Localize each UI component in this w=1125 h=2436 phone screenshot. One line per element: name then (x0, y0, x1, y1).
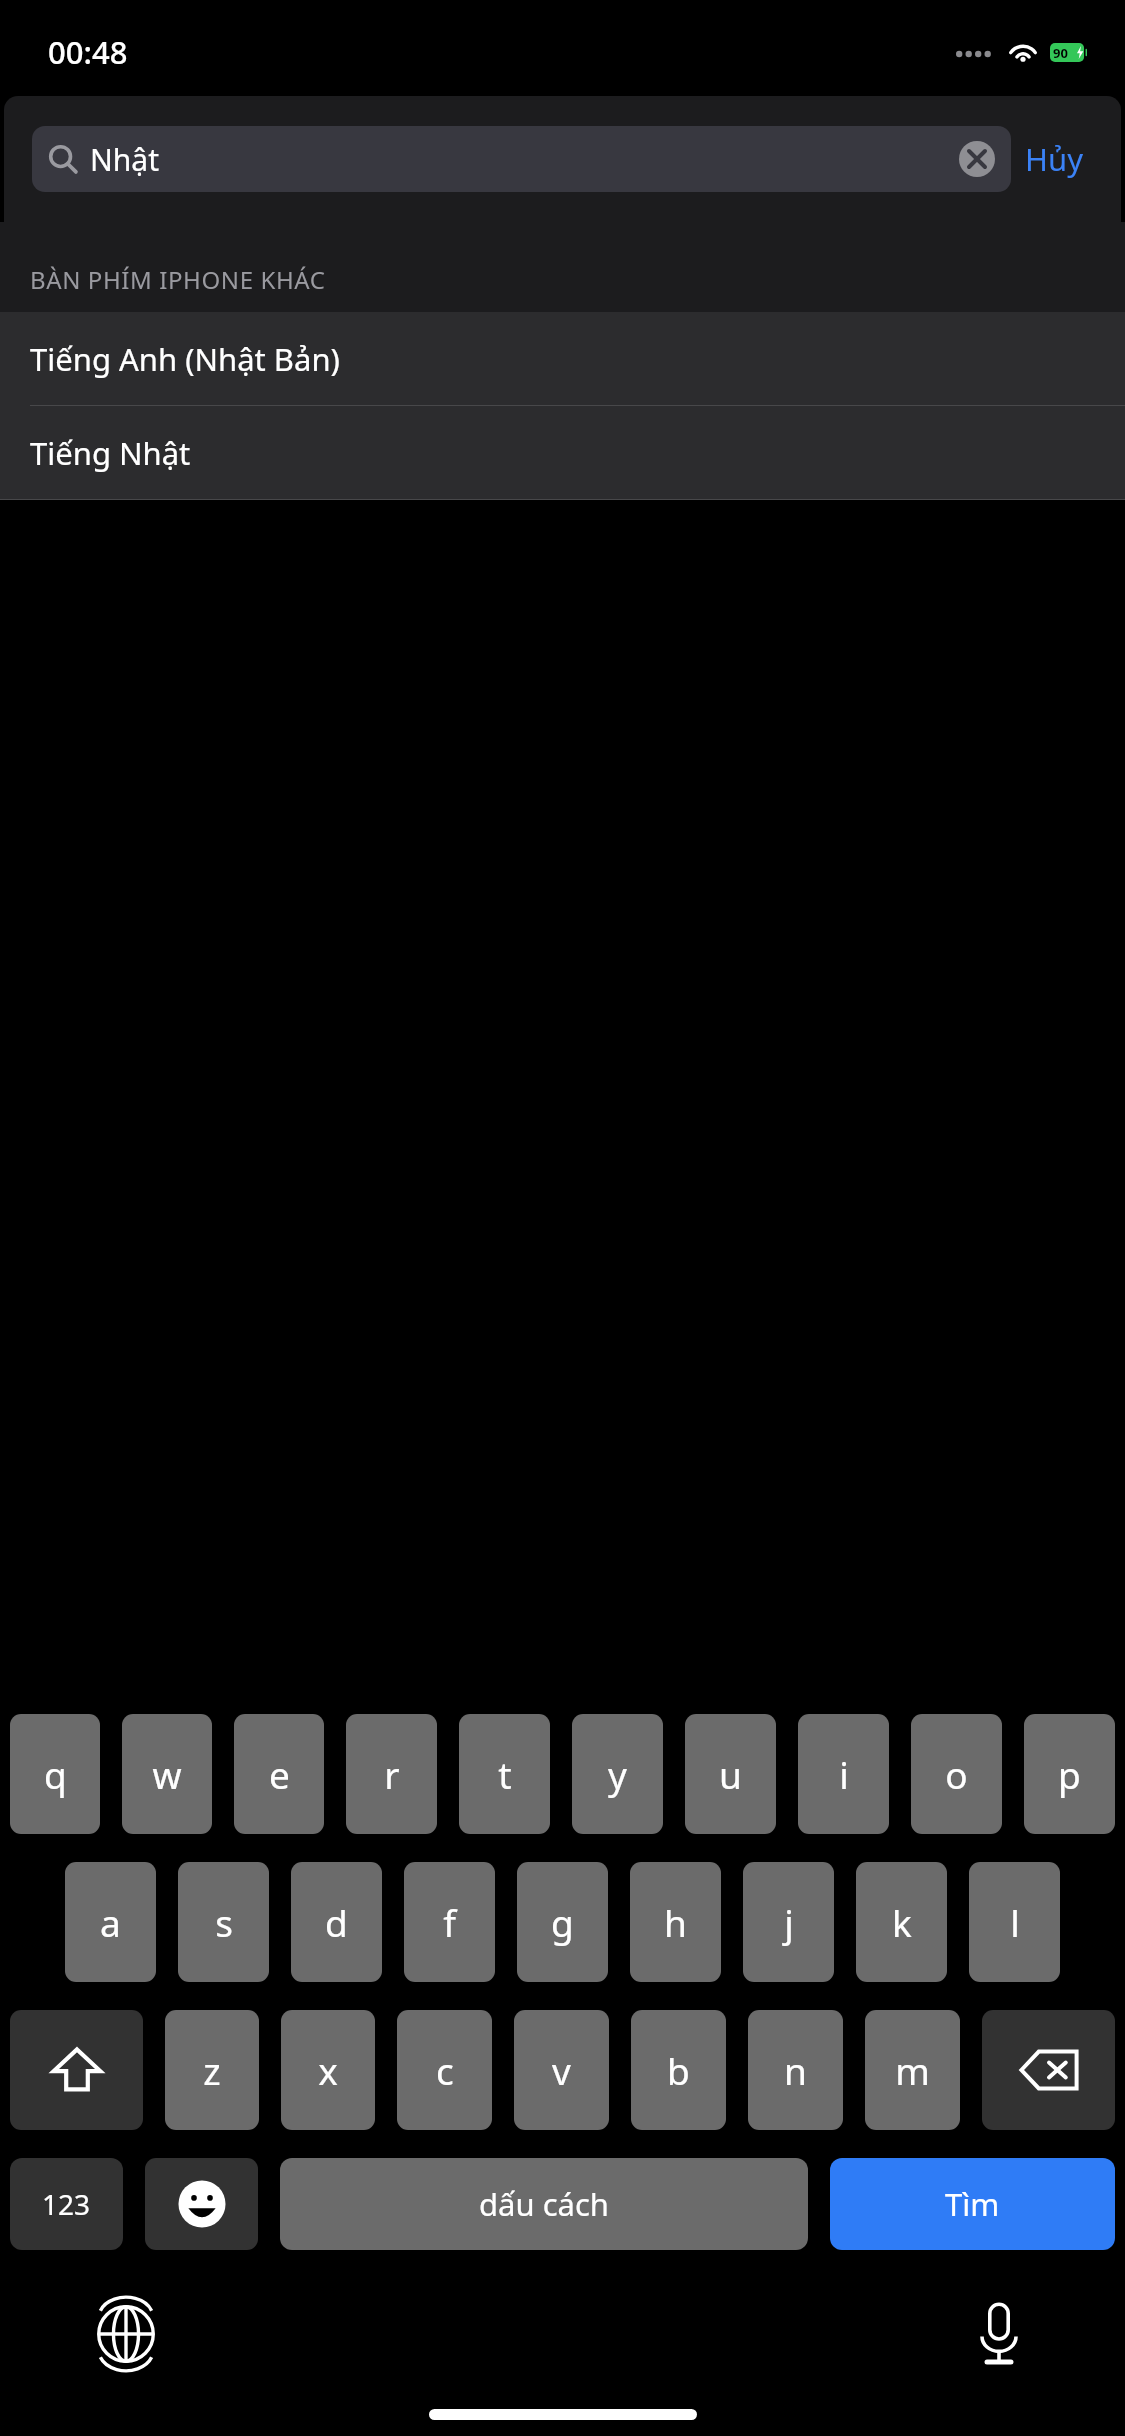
staticText: 123 (42, 2185, 91, 2223)
button[interactable]: q (10, 1714, 100, 1834)
staticText: n (784, 2045, 807, 2095)
button[interactable]: j (743, 1862, 834, 1982)
button[interactable]: Tiếng Anh (Nhật Bản) (0, 312, 1125, 406)
staticText: b (667, 2045, 690, 2095)
staticText: Tiếng Nhật (30, 432, 191, 474)
staticText: Tìm (945, 2183, 1000, 2225)
staticText: 90 (1053, 44, 1068, 62)
button[interactable]: b (631, 2010, 726, 2130)
staticText: u (719, 1749, 742, 1799)
button[interactable]: 123 (10, 2158, 123, 2250)
button[interactable]: i (798, 1714, 889, 1834)
staticText: e (269, 1749, 290, 1799)
staticText: 00:48 (48, 31, 128, 73)
button[interactable]: Clear text (959, 141, 995, 177)
button[interactable]: n (748, 2010, 843, 2130)
staticText: a (100, 1897, 121, 1947)
staticText: y (608, 1749, 627, 1799)
staticText: Tiếng Anh (Nhật Bản) (30, 338, 340, 380)
staticText: t (498, 1749, 512, 1799)
staticText: l (1010, 1897, 1020, 1947)
staticText: r (384, 1749, 400, 1799)
staticText: v (552, 2045, 571, 2095)
button[interactable]: c (397, 2010, 492, 2130)
button[interactable]: w (122, 1714, 212, 1834)
staticText: Hủy (1025, 138, 1083, 180)
button[interactable]: x (281, 2010, 375, 2130)
staticText: p (1058, 1749, 1081, 1799)
button[interactable]: t (459, 1714, 550, 1834)
staticText: BÀN PHÍM IPHONE KHÁC (30, 263, 326, 296)
staticText: j (784, 1897, 794, 1947)
button[interactable]: Dictation (949, 2284, 1049, 2384)
staticText: Nhật (90, 139, 159, 180)
button[interactable]: m (865, 2010, 960, 2130)
button[interactable]: e (234, 1714, 324, 1834)
staticText: f (443, 1897, 456, 1947)
staticText: c (436, 2045, 454, 2095)
button[interactable]: Hủy (1011, 130, 1097, 188)
staticText: s (215, 1897, 233, 1947)
button[interactable]: s (178, 1862, 269, 1982)
staticText: x (318, 2045, 338, 2095)
button[interactable]: f (404, 1862, 495, 1982)
staticText: m (895, 2045, 930, 2095)
button[interactable]: l (969, 1862, 1060, 1982)
staticText: g (551, 1897, 574, 1947)
button[interactable]: Emoji (145, 2158, 258, 2250)
button[interactable]: u (685, 1714, 776, 1834)
button[interactable]: v (514, 2010, 609, 2130)
button[interactable]: Backspace (982, 2010, 1115, 2130)
staticText: z (203, 2045, 221, 2095)
button[interactable]: o (911, 1714, 1002, 1834)
staticText: h (664, 1897, 687, 1947)
staticText: k (892, 1897, 912, 1947)
staticText: q (44, 1749, 67, 1799)
button[interactable]: h (630, 1862, 721, 1982)
staticText: i (839, 1749, 849, 1799)
button[interactable]: a (65, 1862, 156, 1982)
button[interactable]: z (165, 2010, 259, 2130)
button[interactable]: Nhật (32, 126, 1011, 192)
button[interactable]: Tiếng Nhật (0, 406, 1125, 499)
button[interactable]: r (346, 1714, 437, 1834)
button[interactable]: y (572, 1714, 663, 1834)
button[interactable]: Tìm (830, 2158, 1115, 2250)
staticText: o (945, 1749, 968, 1799)
staticText: d (325, 1897, 348, 1947)
button[interactable]: d (291, 1862, 382, 1982)
button[interactable]: g (517, 1862, 608, 1982)
button[interactable]: dấu cách (280, 2158, 808, 2250)
button[interactable]: Shift (10, 2010, 143, 2130)
button[interactable]: Change keyboard (76, 2284, 176, 2384)
staticText: dấu cách (479, 2183, 609, 2225)
button[interactable]: k (856, 1862, 947, 1982)
staticText: w (152, 1749, 182, 1799)
button[interactable]: p (1024, 1714, 1115, 1834)
